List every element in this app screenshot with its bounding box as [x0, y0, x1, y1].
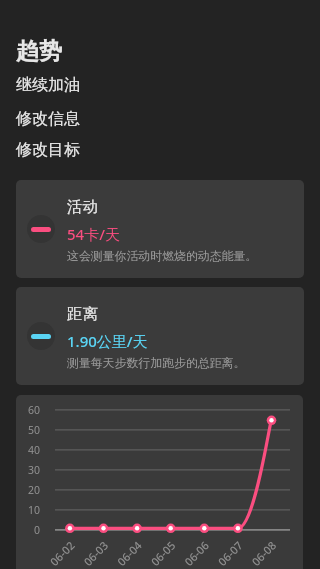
staticText: 这会测量你活动时燃烧的动态能量。 — [67, 249, 258, 264]
button[interactable]: 修改信息 — [16, 109, 80, 129]
staticText: 距离 — [67, 304, 98, 324]
button[interactable] — [16, 395, 303, 569]
staticText: 活动 — [67, 197, 98, 217]
staticText: 1.90公里/天 — [67, 331, 148, 351]
staticText: 趋势 — [16, 37, 62, 66]
staticText: 继续加油 — [16, 75, 80, 95]
button[interactable]: 距离 — [16, 287, 304, 385]
button[interactable]: 修改目标 — [16, 140, 80, 160]
button[interactable]: 活动 — [16, 180, 304, 278]
staticText: 54卡/天 — [67, 224, 120, 244]
staticText: 测量每天步数行加跑步的总距离。 — [67, 356, 246, 371]
